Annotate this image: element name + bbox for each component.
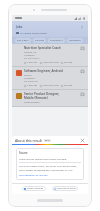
button[interactable]: Past 3 days (15, 38, 31, 43)
staticText: These are job listings from across the w… (19, 157, 67, 160)
button[interactable]: Save job (80, 46, 85, 51)
button[interactable]: Management (67, 38, 83, 43)
button[interactable]: Full-time (33, 38, 46, 43)
staticText: Contractor 2 (50, 39, 63, 42)
staticText: they'll always be labeled with "Sponsore… (19, 169, 74, 172)
staticText: This is an organic result, not an ad. On… (19, 165, 81, 168)
staticText: SeedWorkable (24, 101, 40, 104)
staticText: Full-time (64, 61, 73, 64)
staticText: Send feedback on this info (19, 174, 48, 177)
staticText: Jobs (16, 25, 23, 29)
staticText: Past 3 days (17, 39, 29, 42)
button[interactable]: Send feedback on this info (19, 174, 48, 177)
button[interactable]: Privacy settings (22, 186, 46, 191)
staticText: via angel.net (24, 80, 38, 83)
button[interactable]: Nutrition Specialist Coach (12, 44, 88, 66)
staticText: Full-time (64, 84, 73, 87)
staticText: Management (69, 39, 81, 42)
staticText: All Mobile Grows review (20, 31, 47, 34)
staticText: Nutrition Specialist Coach (24, 46, 61, 50)
staticText: Senior Product Designer, (24, 92, 60, 96)
button[interactable]: Contractor 2 (48, 38, 65, 43)
staticText: Mobile (Remote) (24, 96, 48, 100)
staticText: 2 days ago (27, 61, 38, 64)
staticText: How Search works (57, 187, 76, 190)
staticText: Omada, Inc. (24, 51, 38, 54)
button[interactable]: Software Engineer, Android (12, 67, 88, 89)
button[interactable]: Save job (80, 92, 85, 97)
staticText: Anywhere (24, 54, 35, 57)
staticText: Anywhere (24, 77, 35, 80)
staticText: Work from home (43, 84, 59, 87)
button[interactable]: Close (80, 138, 85, 143)
staticText: 2 days ago (27, 84, 38, 87)
staticText: BETA (45, 139, 50, 142)
staticText: Source (19, 151, 28, 155)
staticText: via Monster.co (24, 57, 40, 60)
button[interactable]: Save job (80, 69, 85, 74)
staticText: Full-time (35, 39, 44, 42)
staticText: Software Engineer, Android (24, 69, 63, 73)
staticText: Work from home (43, 61, 59, 64)
staticText: About this result (15, 138, 42, 143)
staticText: Grisms (24, 74, 32, 77)
button[interactable]: Senior Product Designer, (12, 90, 88, 106)
staticText: Privacy settings (27, 187, 44, 190)
button[interactable]: How Search works (52, 186, 78, 191)
button[interactable]: More options (79, 24, 84, 29)
